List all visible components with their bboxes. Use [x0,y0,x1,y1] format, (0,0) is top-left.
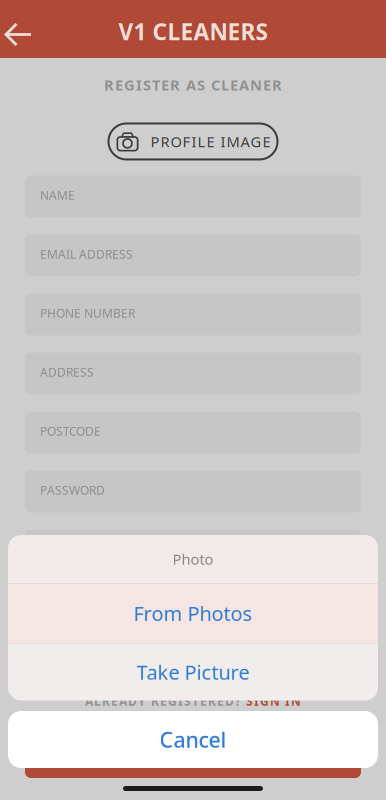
staticText: PHONE NUMBER [40,305,135,321]
staticText: POSTCODE [40,423,101,439]
staticText: Take Picture [136,659,249,685]
staticText: S I G N I N [246,693,301,709]
button[interactable]: ADDRESS [25,352,361,394]
button[interactable]: P R O F I L E I M A G E [107,122,278,160]
button[interactable]: Cancel [8,711,378,768]
staticText: V1 CLEANERS [118,16,267,46]
button[interactable]: R E G I S T E R [0,734,386,800]
button[interactable]: POSTCODE [25,411,361,453]
button[interactable]: CONFIRM PASSWORD [25,529,361,571]
button[interactable]: EMAIL ADDRESS [25,234,361,276]
staticText: R E G I S T E R A S C L E A N E R [104,75,282,94]
staticText: From Photos [133,600,252,627]
staticText: Photo [172,549,213,569]
staticText: Cancel [159,725,226,754]
staticText: ADDRESS [40,364,94,380]
button[interactable]: From Photos [8,583,378,643]
staticText: PASSWORD [40,482,105,498]
button[interactable]: Back [0,0,50,58]
button[interactable]: PASSWORD [25,470,361,512]
staticText: A L R E A D Y R E G I S T E R E D ? [85,693,241,709]
staticText: P R O F I L E I M A G E [150,132,270,151]
button[interactable]: Take Picture [8,643,378,700]
staticText: EMAIL ADDRESS [40,246,133,262]
staticText: R E G I S T E R [149,745,237,767]
staticText: NAME [40,187,75,203]
button[interactable]: S I G N I N [246,693,301,709]
button[interactable]: NAME [25,175,361,217]
button[interactable]: PHONE NUMBER [25,293,361,335]
